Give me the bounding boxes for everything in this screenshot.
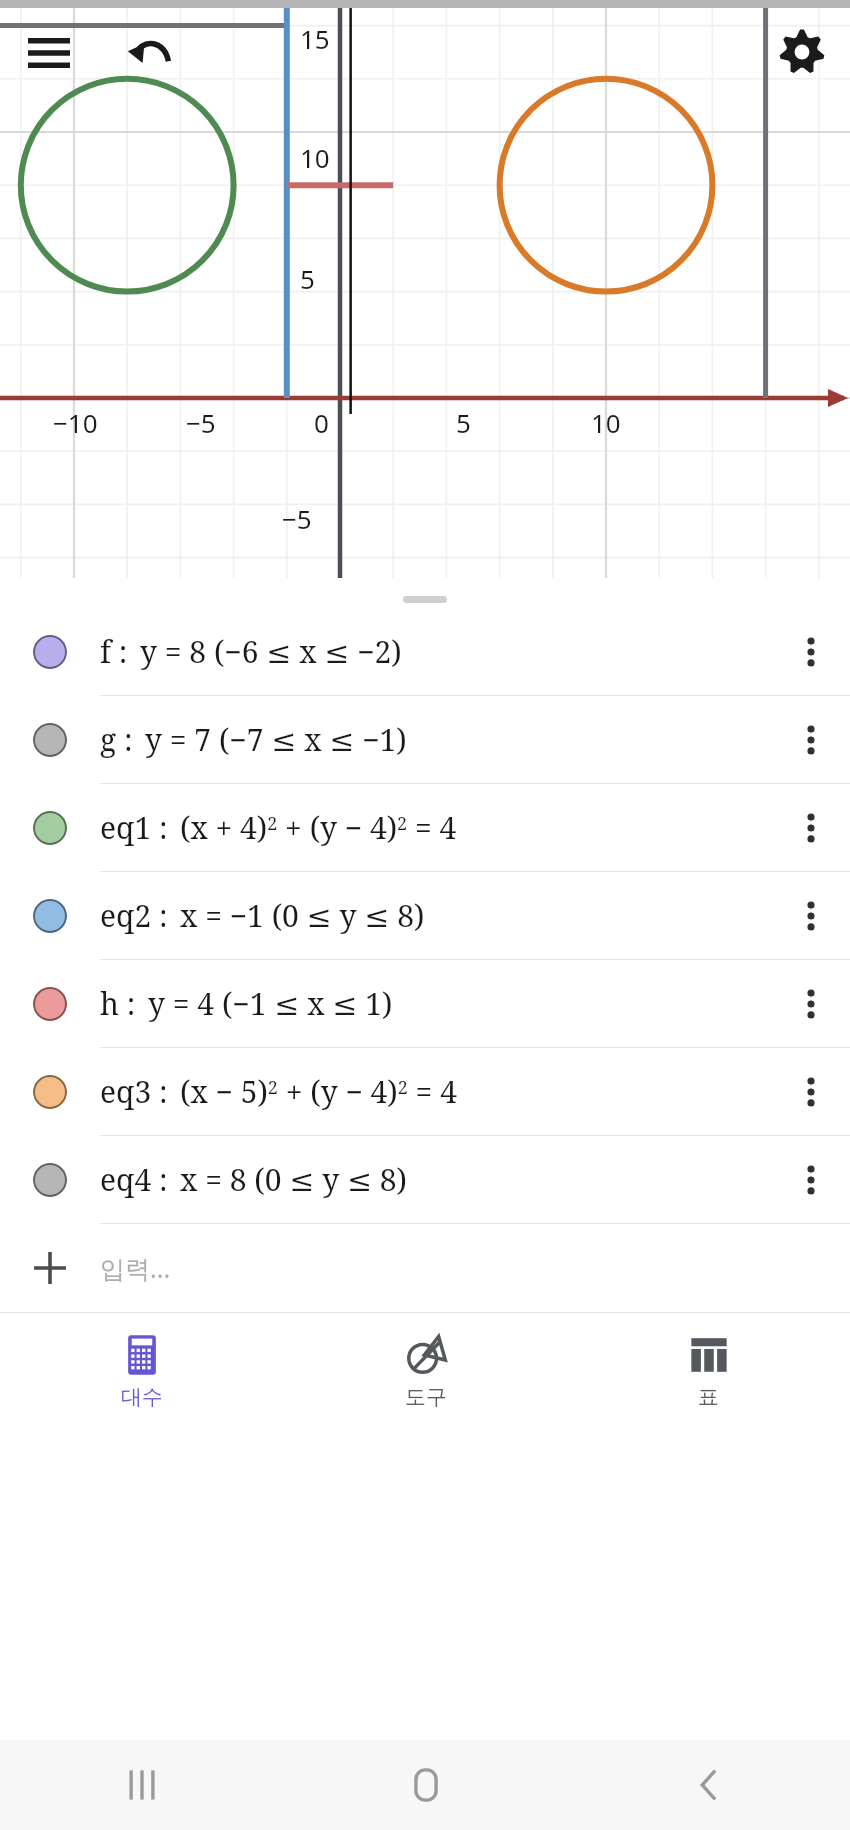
staticText: 15 xyxy=(300,21,330,56)
button[interactable]: eq2 : xyxy=(0,872,850,959)
button[interactable]: eq1 : xyxy=(0,784,850,871)
staticText: x = −1 (0 ≤ y ≤ 8) xyxy=(180,895,425,936)
button[interactable]: More options xyxy=(772,1048,850,1135)
staticText: 10 xyxy=(300,140,330,175)
staticText: f : xyxy=(100,631,128,672)
button[interactable]: Recents xyxy=(0,1740,284,1830)
staticText: (x − 5)2 + (y − 4)2 = 4 xyxy=(180,1071,457,1112)
staticText: y = 8 (−6 ≤ x ≤ −2) xyxy=(140,631,402,672)
staticText: 표 xyxy=(698,1384,719,1410)
staticText: y = 7 (−7 ≤ x ≤ −1) xyxy=(145,719,407,760)
staticText: eq2 : xyxy=(100,895,168,936)
button[interactable]: Settings xyxy=(770,20,834,84)
staticText: 대수 xyxy=(121,1384,163,1410)
button[interactable]: Back xyxy=(567,1740,850,1830)
staticText: −5 xyxy=(282,501,312,536)
button[interactable]: Menu xyxy=(18,22,80,84)
button[interactable]: eq3 : xyxy=(0,1048,850,1135)
button[interactable]: Home xyxy=(284,1740,567,1830)
staticText: 10 xyxy=(591,405,621,440)
button[interactable]: f : xyxy=(0,608,850,695)
button[interactable]: 입력... xyxy=(0,1224,850,1312)
button[interactable]: h : xyxy=(0,960,850,1047)
staticText: −10 xyxy=(53,405,98,440)
staticText: 5 xyxy=(456,405,471,440)
button[interactable]: g : xyxy=(0,696,850,783)
staticText: 5 xyxy=(300,261,315,296)
button[interactable]: More options xyxy=(772,1136,850,1223)
staticText: −5 xyxy=(186,405,216,440)
staticText: h : xyxy=(100,983,136,1024)
staticText: eq3 : xyxy=(100,1071,168,1112)
staticText: 도구 xyxy=(405,1384,447,1410)
button[interactable]: More options xyxy=(772,608,850,695)
staticText: x = 8 (0 ≤ y ≤ 8) xyxy=(180,1159,408,1200)
button[interactable]: 표 xyxy=(567,1313,850,1431)
button[interactable]: More options xyxy=(772,960,850,1047)
staticText: 입력... xyxy=(100,1251,171,1285)
staticText: y = 4 (−1 ≤ x ≤ 1) xyxy=(148,983,393,1024)
button[interactable]: Undo xyxy=(118,22,180,84)
button[interactable]: More options xyxy=(772,872,850,959)
button[interactable]: More options xyxy=(772,784,850,871)
staticText: eq1 : xyxy=(100,807,168,848)
button[interactable]: 도구 xyxy=(284,1313,567,1431)
button[interactable]: 대수 xyxy=(0,1313,284,1431)
staticText: (x + 4)2 + (y − 4)2 = 4 xyxy=(180,807,457,848)
staticText: eq4 : xyxy=(100,1159,168,1200)
staticText: −10 xyxy=(282,622,327,657)
button[interactable]: eq4 : xyxy=(0,1136,850,1223)
staticText: g : xyxy=(100,719,133,760)
staticText: 0 xyxy=(314,405,329,440)
button[interactable]: More options xyxy=(772,696,850,783)
